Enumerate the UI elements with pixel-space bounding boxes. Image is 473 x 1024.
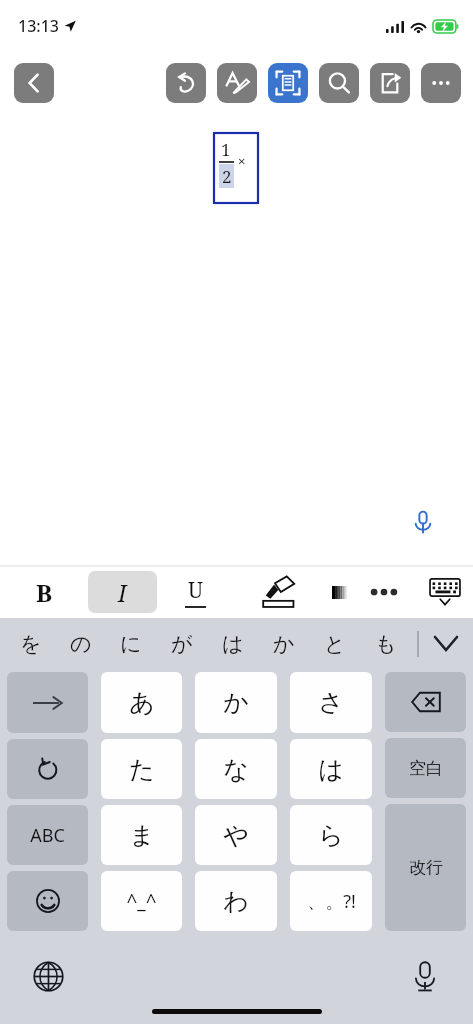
- staticText: あ: [129, 687, 155, 718]
- staticText: ×: [238, 152, 246, 170]
- button[interactable]: Undo: [166, 63, 206, 103]
- button[interactable]: 改行: [385, 804, 466, 931]
- staticText: も: [375, 631, 397, 657]
- staticText: さ: [318, 687, 344, 718]
- staticText: ま: [129, 820, 155, 851]
- button[interactable]: Search: [319, 63, 359, 103]
- staticText: は: [222, 631, 244, 657]
- button[interactable]: Share: [370, 63, 410, 103]
- button[interactable]: ら: [290, 805, 372, 865]
- button[interactable]: Highlight: [233, 566, 327, 618]
- button[interactable]: や: [195, 805, 277, 865]
- staticText: と: [324, 631, 346, 657]
- button[interactable]: を: [6, 618, 56, 669]
- button[interactable]: Dictate: [395, 494, 451, 550]
- staticText: の: [70, 631, 92, 657]
- staticText: 13:13: [18, 15, 59, 37]
- button[interactable]: も: [360, 618, 411, 669]
- button[interactable]: Expand suggestions: [419, 618, 473, 669]
- button[interactable]: 空白: [385, 738, 466, 798]
- button[interactable]: は: [290, 739, 372, 799]
- button[interactable]: あ: [101, 672, 182, 733]
- button[interactable]: わ: [195, 871, 277, 931]
- button[interactable]: ^_^: [101, 871, 182, 931]
- button[interactable]: Undo: [7, 739, 88, 799]
- button[interactable]: Draw: [217, 63, 257, 103]
- button[interactable]: More: [421, 63, 461, 103]
- button[interactable]: Scan: [268, 63, 308, 103]
- staticText: を: [20, 631, 42, 657]
- button[interactable]: の: [56, 618, 106, 669]
- staticText: が: [171, 631, 193, 657]
- staticText: か: [223, 687, 249, 718]
- button[interactable]: Back: [14, 63, 54, 103]
- button[interactable]: B: [0, 566, 88, 618]
- staticText: 改行: [409, 857, 443, 878]
- button[interactable]: Switch language: [28, 956, 68, 996]
- button[interactable]: 、。?!: [290, 871, 372, 931]
- button[interactable]: た: [101, 739, 182, 799]
- button[interactable]: U: [157, 566, 233, 618]
- button[interactable]: さ: [290, 672, 372, 733]
- button[interactable]: か: [195, 672, 277, 733]
- staticText: に: [120, 631, 142, 657]
- staticText: ら: [318, 820, 344, 851]
- staticText: か: [273, 631, 295, 657]
- button[interactable]: が: [156, 618, 207, 669]
- staticText: ^_^: [126, 888, 157, 914]
- button[interactable]: な: [195, 739, 277, 799]
- staticText: ABC: [30, 823, 65, 848]
- staticText: 1: [221, 138, 231, 161]
- button[interactable]: は: [207, 618, 258, 669]
- staticText: I: [118, 577, 127, 608]
- staticText: 空白: [409, 758, 443, 779]
- staticText: や: [223, 820, 249, 851]
- button[interactable]: ABC: [7, 805, 88, 865]
- staticText: U: [188, 576, 204, 605]
- staticText: な: [223, 754, 249, 785]
- staticText: わ: [223, 886, 249, 917]
- button[interactable]: Delete: [385, 672, 466, 732]
- button[interactable]: I: [88, 571, 157, 613]
- button[interactable]: Hide keyboard: [417, 566, 473, 618]
- button[interactable]: ま: [101, 805, 182, 865]
- staticText: 2: [222, 165, 232, 188]
- staticText: 、。?!: [307, 889, 356, 914]
- button[interactable]: と: [309, 618, 360, 669]
- button[interactable]: 1: [214, 133, 258, 203]
- button[interactable]: か: [258, 618, 309, 669]
- button[interactable]: Voice input: [405, 956, 445, 996]
- button[interactable]: Emoji: [7, 871, 88, 931]
- staticText: た: [129, 754, 155, 785]
- button[interactable]: More formatting: [351, 566, 417, 618]
- button[interactable]: に: [106, 618, 156, 669]
- button[interactable]: Move cursor right: [7, 672, 88, 733]
- staticText: B: [36, 576, 53, 609]
- staticText: は: [318, 754, 344, 785]
